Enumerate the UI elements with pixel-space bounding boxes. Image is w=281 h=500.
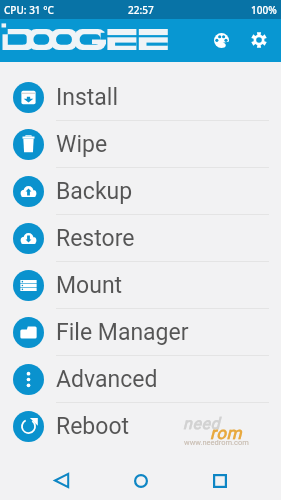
staticText: Mount (56, 272, 123, 299)
button[interactable]: Recents (202, 463, 237, 498)
staticText: Wipe (56, 131, 108, 158)
staticText: Advanced (56, 366, 158, 393)
staticText: Backup (56, 178, 133, 205)
staticText: Restore (56, 225, 135, 252)
staticText: www.needrom.com (184, 438, 249, 447)
staticText: Install (56, 84, 119, 111)
button[interactable]: Advanced (0, 356, 281, 403)
button[interactable]: Settings (245, 26, 273, 54)
button[interactable]: Back (44, 463, 79, 498)
button[interactable]: Home (123, 463, 158, 498)
staticText: Reboot (56, 413, 130, 440)
button[interactable]: Install (0, 74, 281, 121)
button[interactable]: Backup (0, 168, 281, 215)
button[interactable]: Mount (0, 262, 281, 309)
staticText: need (183, 414, 221, 433)
button[interactable]: Reboot (0, 403, 281, 450)
button[interactable]: File Manager (0, 309, 281, 356)
staticText: 22:57 (128, 3, 154, 17)
staticText: rom (210, 423, 242, 443)
button[interactable]: Theme (207, 26, 235, 54)
staticText: 100% (251, 3, 277, 17)
staticText: File Manager (56, 319, 189, 346)
staticText: CPU: 31 °C (4, 3, 54, 17)
button[interactable]: Restore (0, 215, 281, 262)
button[interactable]: Wipe (0, 121, 281, 168)
